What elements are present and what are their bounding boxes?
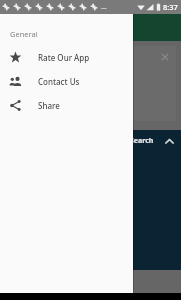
- staticText: Rate Our App: [38, 52, 90, 63]
- staticText: Search: [130, 136, 154, 146]
- other: Collapse: [164, 136, 175, 147]
- button[interactable]: Rate Our App: [0, 45, 133, 69]
- staticText: Share: [38, 100, 60, 111]
- staticText: Contact Us: [38, 76, 80, 87]
- staticText: 8:37: [163, 2, 178, 12]
- staticText: General: [10, 29, 38, 39]
- button[interactable]: Share: [0, 93, 133, 117]
- button[interactable]: Contact Us: [0, 69, 133, 93]
- button[interactable]: Close: [160, 52, 170, 62]
- button[interactable]: Search: [0, 130, 181, 152]
- staticText: ...: [101, 2, 107, 12]
